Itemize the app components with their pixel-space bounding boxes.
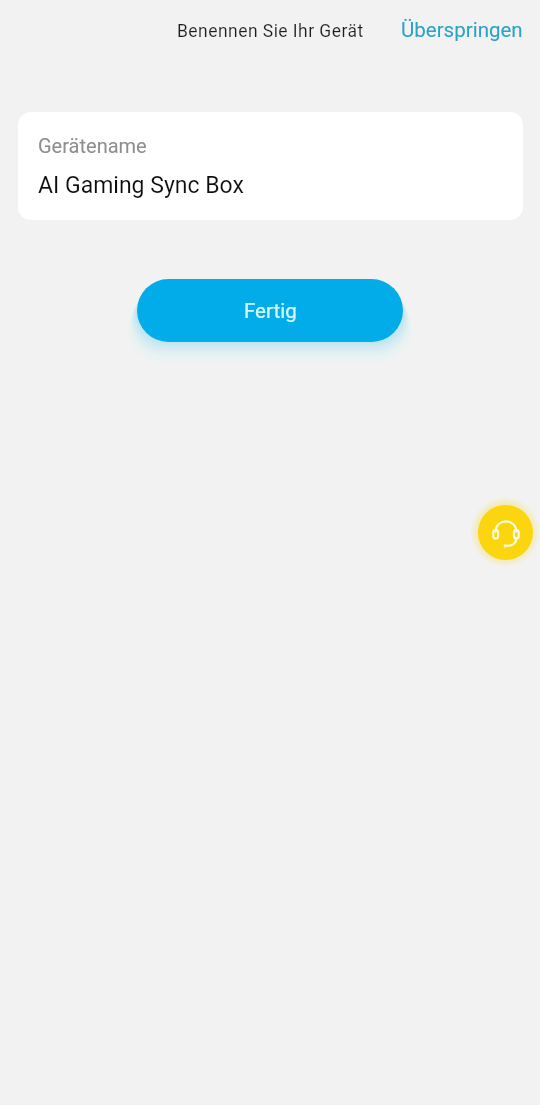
button[interactable]: Support: [478, 505, 533, 560]
staticText: Fertig: [244, 299, 297, 323]
button[interactable]: Fertig: [137, 279, 403, 342]
button[interactable]: Gerätename: [18, 112, 523, 220]
staticText: AI Gaming Sync Box: [38, 172, 244, 199]
staticText: Überspringen: [401, 18, 523, 42]
staticText: Gerätename: [38, 134, 147, 157]
button[interactable]: Überspringen: [384, 7, 540, 53]
staticText: Benennen Sie Ihr Gerät: [177, 21, 364, 42]
